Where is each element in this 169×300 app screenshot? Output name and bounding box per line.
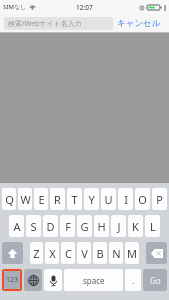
staticText: N <box>112 246 121 261</box>
staticText: L <box>150 219 156 234</box>
button[interactable]: Change keyboard <box>24 269 42 291</box>
staticText: J <box>117 219 121 234</box>
button[interactable]: 検索/Webサイト名入力 <box>4 17 113 30</box>
button[interactable]: 123 <box>4 271 20 289</box>
staticText: U <box>104 192 113 207</box>
button[interactable]: Q <box>2 188 16 210</box>
staticText: W <box>20 192 31 207</box>
button[interactable]: S <box>26 215 41 237</box>
button[interactable]: H <box>94 215 109 237</box>
button[interactable]: O <box>135 188 150 210</box>
staticText: Z <box>33 246 40 261</box>
button[interactable]: D <box>43 215 58 237</box>
button[interactable]: K <box>128 215 143 237</box>
button[interactable]: J <box>111 215 126 237</box>
button[interactable]: G <box>77 215 92 237</box>
button[interactable]: Dictation <box>44 269 62 291</box>
staticText: H <box>97 219 106 234</box>
button[interactable]: B <box>93 242 107 264</box>
staticText: 12:07 <box>76 3 93 12</box>
staticText: キャンセル <box>117 18 161 29</box>
button[interactable]: T <box>67 188 82 210</box>
staticText: B <box>96 246 104 261</box>
button[interactable]: キャンセル <box>113 16 165 31</box>
staticText: Go <box>150 275 161 286</box>
staticText: O <box>138 192 147 207</box>
staticText: F <box>65 219 71 234</box>
staticText: K <box>132 219 139 234</box>
button[interactable]: I <box>118 188 133 210</box>
button[interactable]: V <box>77 242 91 264</box>
staticText: E <box>38 192 45 207</box>
staticText: 123 <box>6 275 19 285</box>
staticText: R <box>54 192 61 207</box>
staticText: SIMなし <box>3 3 27 11</box>
staticText: Q <box>5 192 14 207</box>
staticText: T <box>71 192 78 207</box>
button[interactable]: U <box>101 188 116 210</box>
button[interactable]: L <box>145 215 160 237</box>
staticText: 検索/Webサイト名入力 <box>8 19 82 29</box>
staticText: Y <box>88 192 95 207</box>
staticText: space <box>83 275 105 286</box>
staticText: C <box>65 246 72 261</box>
staticText: X <box>49 246 56 261</box>
button[interactable]: A <box>9 215 24 237</box>
staticText: G <box>80 219 89 234</box>
button[interactable]: Shift <box>2 242 23 264</box>
button[interactable]: R <box>50 188 65 210</box>
staticText: S <box>30 219 37 234</box>
button[interactable]: M <box>125 242 139 264</box>
button[interactable]: Go <box>143 269 167 291</box>
staticText: . <box>132 274 135 286</box>
button[interactable]: space <box>64 269 123 291</box>
staticText: I <box>124 192 128 207</box>
button[interactable]: X <box>45 242 59 264</box>
button[interactable]: P <box>152 188 167 210</box>
button[interactable]: . <box>125 269 141 291</box>
button[interactable]: E <box>34 188 48 210</box>
button[interactable]: C <box>61 242 75 264</box>
button[interactable]: Delete <box>146 242 167 264</box>
staticText: D <box>46 219 55 234</box>
button[interactable]: F <box>60 215 75 237</box>
button[interactable]: W <box>18 188 32 210</box>
button[interactable]: Y <box>84 188 99 210</box>
staticText: V <box>81 246 88 261</box>
staticText: M <box>127 246 137 261</box>
button[interactable]: Z <box>30 242 43 264</box>
button[interactable]: N <box>109 242 123 264</box>
staticText: A <box>13 219 21 234</box>
staticText: P <box>156 192 163 207</box>
